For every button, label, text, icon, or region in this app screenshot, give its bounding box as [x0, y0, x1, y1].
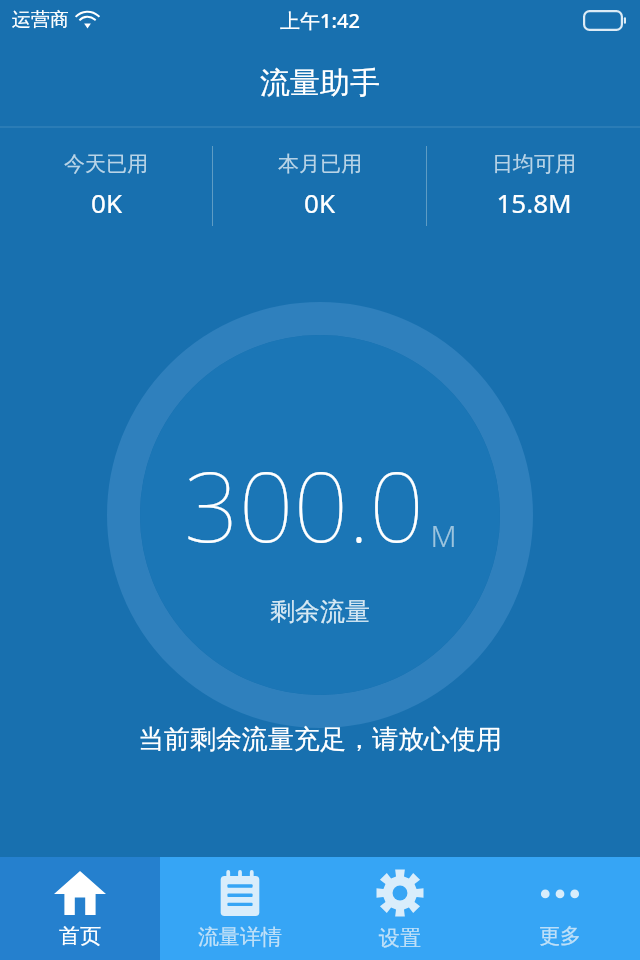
- staticText: 日均可用: [492, 151, 576, 177]
- other: 流量详情: [219, 870, 261, 916]
- button[interactable]: 日均可用: [427, 128, 640, 243]
- staticText: 15.8M: [496, 185, 572, 220]
- button[interactable]: 今天已用: [0, 128, 212, 243]
- staticText: 今天已用: [64, 151, 148, 177]
- button[interactable]: 设置: [320, 857, 480, 960]
- staticText: 更多: [539, 923, 581, 949]
- staticText: 剩余流量: [270, 596, 370, 627]
- staticText: 本月已用: [278, 151, 362, 177]
- staticText: M: [430, 515, 457, 556]
- staticText: 首页: [59, 923, 101, 949]
- other: 更多: [537, 871, 583, 915]
- staticText: 流量详情: [198, 924, 282, 950]
- staticText: 当前剩余流量充足，请放心使用: [138, 723, 502, 756]
- staticText: 流量助手: [260, 64, 380, 102]
- staticText: 0K: [304, 185, 335, 220]
- button[interactable]: 流量详情: [160, 857, 320, 960]
- staticText: 运营商: [12, 8, 69, 32]
- staticText: 300.0: [184, 439, 424, 570]
- button[interactable]: 本月已用: [213, 128, 426, 243]
- other: 设置: [376, 869, 424, 917]
- staticText: 上午1:42: [280, 7, 360, 34]
- staticText: 0K: [91, 185, 122, 220]
- staticText: 设置: [379, 925, 421, 951]
- button[interactable]: 更多: [480, 857, 640, 960]
- button[interactable]: 首页: [0, 857, 160, 960]
- other: 首页: [54, 871, 106, 915]
